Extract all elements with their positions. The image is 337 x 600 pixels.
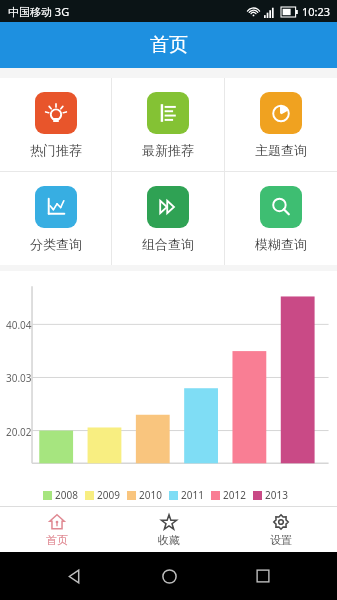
staticText: 中国移动 3G <box>8 4 70 19</box>
button[interactable]: 热门推荐 <box>0 78 111 171</box>
staticText: 20.02 <box>6 425 32 439</box>
staticText: 2010 <box>139 488 162 502</box>
staticText: 收藏 <box>158 533 180 547</box>
staticText: 首页 <box>46 533 68 547</box>
button[interactable]: 设置 <box>225 507 337 552</box>
button[interactable]: Home <box>149 556 189 596</box>
staticText: 30.03 <box>6 371 32 385</box>
button[interactable]: 收藏 <box>113 507 225 552</box>
staticText: 分类查询 <box>30 236 82 252</box>
button[interactable]: 最新推荐 <box>112 78 224 171</box>
staticText: 组合查询 <box>142 236 194 252</box>
staticText: 主题查询 <box>255 142 307 158</box>
button[interactable]: Recents <box>243 556 283 596</box>
staticText: 40.04 <box>6 318 32 332</box>
button[interactable]: 组合查询 <box>112 172 224 265</box>
staticText: 模糊查询 <box>255 236 307 252</box>
button[interactable]: Back <box>54 556 94 596</box>
staticText: 2013 <box>265 488 288 502</box>
button[interactable]: 主题查询 <box>225 78 337 171</box>
staticText: 首页 <box>150 33 188 57</box>
staticText: 2008 <box>55 488 78 502</box>
staticText: 最新推荐 <box>142 142 194 158</box>
staticText: 2009 <box>97 488 120 502</box>
button[interactable]: 分类查询 <box>0 172 111 265</box>
button[interactable]: 首页 <box>0 507 113 552</box>
staticText: 2012 <box>223 488 246 502</box>
staticText: 热门推荐 <box>30 142 82 158</box>
staticText: 10:23 <box>302 4 331 19</box>
staticText: 设置 <box>270 533 292 547</box>
staticText: 2011 <box>181 488 204 502</box>
button[interactable]: 模糊查询 <box>225 172 337 265</box>
